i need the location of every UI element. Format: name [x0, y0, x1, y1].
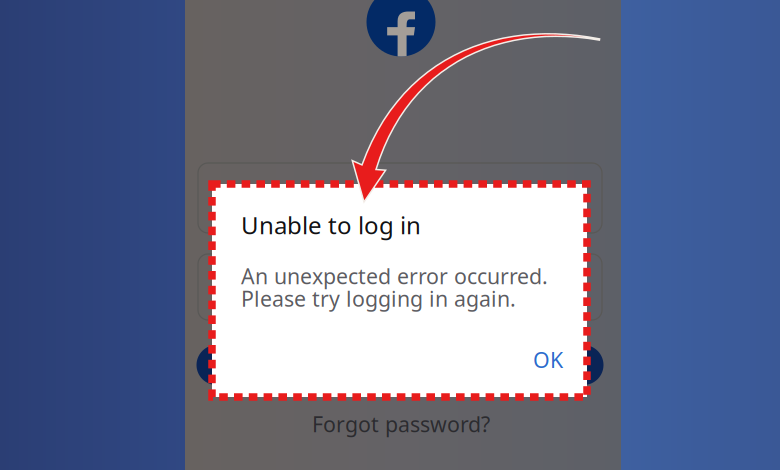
staticText: Unable to log in: [241, 209, 421, 241]
button[interactable]: Forgot password?: [312, 410, 490, 438]
button[interactable]: Log in: [196, 345, 603, 385]
button[interactable]: OK: [515, 334, 581, 386]
staticText: Please try logging in again.: [241, 284, 516, 312]
staticText: An unexpected error occurred.: [241, 262, 548, 290]
staticText: Forgot password?: [312, 410, 490, 438]
staticText: OK: [533, 346, 563, 374]
